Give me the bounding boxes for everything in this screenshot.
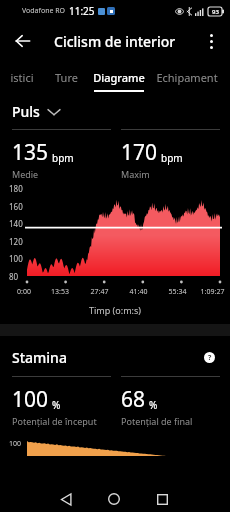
staticText: 100 <box>9 439 22 449</box>
staticText: Potențial de final <box>121 415 193 427</box>
staticText: 68 <box>121 385 146 414</box>
button[interactable]: Help <box>198 346 220 368</box>
staticText: Puls <box>12 102 40 121</box>
button[interactable]: Back <box>52 486 80 512</box>
staticText: Potențial de început <box>12 415 97 427</box>
staticText: Ture <box>55 70 78 85</box>
staticText: bpm <box>52 151 74 165</box>
staticText: 100 <box>9 253 23 264</box>
staticText: % <box>52 398 61 412</box>
staticText: 1:09:27 <box>197 287 228 297</box>
staticText: 55:34 <box>158 287 197 297</box>
staticText: 13:53 <box>40 287 80 297</box>
staticText: Maxim <box>121 168 150 180</box>
button[interactable]: Diagrame <box>88 60 150 94</box>
staticText: 27:47 <box>80 287 119 297</box>
staticText: Vodafone RO <box>22 6 66 16</box>
staticText: istici <box>10 70 34 85</box>
button[interactable]: Back <box>8 26 38 56</box>
button[interactable]: Home <box>100 486 128 512</box>
staticText: Medie <box>12 168 39 180</box>
staticText: 135 <box>12 138 49 167</box>
staticText: 120 <box>9 236 23 247</box>
staticText: 180 <box>9 183 23 194</box>
staticText: 41:40 <box>119 287 158 297</box>
staticText: Timp (o:m:s) <box>0 304 230 316</box>
staticText: 0:00 <box>8 287 40 297</box>
button[interactable]: Ture <box>44 60 88 94</box>
button[interactable]: More options <box>196 26 226 56</box>
staticText: 170 <box>121 138 158 167</box>
staticText: 11:25 <box>69 4 95 18</box>
staticText: Diagrame <box>93 70 145 85</box>
staticText: ? <box>208 353 212 363</box>
button[interactable]: Recent apps <box>148 486 176 512</box>
staticText: 140 <box>9 218 23 229</box>
staticText: 100 <box>12 385 49 414</box>
staticText: Ciclism de interior <box>54 32 176 51</box>
button[interactable]: istici <box>0 60 44 94</box>
staticText: 93 <box>212 8 219 16</box>
staticText: % <box>149 398 158 412</box>
button[interactable]: Echipament <box>150 60 224 94</box>
staticText: bpm <box>161 151 183 165</box>
staticText: Stamina <box>12 348 67 367</box>
staticText: 80 <box>9 271 19 282</box>
staticText: 160 <box>9 201 23 212</box>
button[interactable]: Puls <box>12 102 230 121</box>
staticText: Echipament <box>156 70 218 85</box>
